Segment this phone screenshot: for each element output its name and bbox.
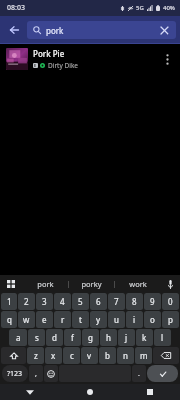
button[interactable]: Back [4,20,24,40]
staticText: 1 [7,296,12,307]
button[interactable]: work [115,275,160,293]
button[interactable]: . [132,365,146,382]
button[interactable]: pork [27,21,176,39]
button[interactable]: w [18,311,35,328]
staticText: 3 [42,296,47,307]
staticText: o [150,314,155,325]
staticText: e [42,314,47,325]
staticText: 6 [96,296,101,307]
staticText: Pork Pie [33,48,65,59]
button[interactable]: Backspace [153,347,179,364]
staticText: w [23,314,30,325]
button[interactable]: m [135,347,152,364]
button[interactable]: Shift [1,347,26,364]
button[interactable]: e [36,311,53,328]
button[interactable]: More options [160,47,174,71]
staticText: c [70,350,74,361]
staticText: y [96,314,101,325]
staticText: 5G [136,4,144,12]
staticText: work [129,279,147,289]
button[interactable]: 8 [126,293,143,310]
button[interactable]: 3 [36,293,53,310]
button[interactable]: 0 [162,293,179,310]
button[interactable]: b [99,347,116,364]
staticText: . [138,369,140,379]
staticText: n [123,350,128,361]
button[interactable]: Back [0,384,60,400]
staticText: p [168,314,173,325]
staticText: x [51,350,56,361]
button[interactable]: Enter [147,365,178,382]
button[interactable]: Recent apps [120,384,180,400]
button[interactable]: p [162,311,179,328]
button[interactable]: 4 [54,293,71,310]
button[interactable]: Keyboard toolbar [0,275,22,293]
button[interactable]: r [54,311,71,328]
button[interactable]: v [81,347,98,364]
button[interactable]: 2 [18,293,35,310]
button[interactable]: d [46,329,63,346]
staticText: Dirty Dike [48,61,79,70]
button[interactable]: u [108,311,125,328]
staticText: 08:03 [7,3,25,13]
staticText: pork [37,279,54,289]
staticText: m [140,350,148,361]
button[interactable]: x [45,347,62,364]
button[interactable]: ?123 [2,365,28,382]
button[interactable]: Clear search [158,24,170,36]
button[interactable]: Emoji [44,365,58,382]
staticText: l [161,332,164,343]
staticText: q [7,314,12,325]
button[interactable]: pork [22,275,68,293]
staticText: u [114,314,119,325]
button[interactable]: s [28,329,45,346]
button[interactable]: 9 [144,293,161,310]
staticText: , [35,369,37,379]
staticText: 7 [114,296,119,307]
staticText: E [34,63,37,68]
button[interactable]: k [136,329,153,346]
button[interactable]: i [126,311,143,328]
button[interactable]: q [1,311,17,328]
button[interactable]: Voice input [160,275,180,293]
button[interactable]: 6 [90,293,107,310]
staticText: 0 [168,296,173,307]
button[interactable]: 5 [72,293,89,310]
button[interactable]: porky [69,275,114,293]
button[interactable]: t [72,311,89,328]
button[interactable]: c [63,347,80,364]
staticText: 9 [150,296,155,307]
button[interactable]: l [154,329,171,346]
button[interactable]: y [90,311,107,328]
button[interactable]: z [27,347,44,364]
staticText: v [87,350,92,361]
staticText: 8 [132,296,137,307]
staticText: a [16,332,21,343]
staticText: ?123 [7,369,23,379]
button[interactable]: h [100,329,117,346]
button[interactable]: g [82,329,99,346]
button[interactable]: o [144,311,161,328]
staticText: 5 [78,296,83,307]
staticText: 2 [24,296,29,307]
staticText: g [88,332,93,343]
staticText: 4 [60,296,65,307]
staticText: j [125,332,128,343]
button[interactable]: n [117,347,134,364]
button[interactable]: j [118,329,135,346]
staticText: pork [46,25,64,36]
staticText: porky [81,279,102,289]
button[interactable]: Home [60,384,120,400]
button[interactable]: a [9,329,27,346]
staticText: 40% [163,4,175,12]
button[interactable]: 7 [108,293,125,310]
staticText: i [133,314,136,325]
staticText: r [61,314,65,325]
button[interactable]: Pork Pie [0,44,180,74]
staticText: d [52,332,57,343]
button[interactable]: f [64,329,81,346]
staticText: t [79,314,82,325]
button[interactable]: 1 [1,293,17,310]
button[interactable]: , [29,365,43,382]
